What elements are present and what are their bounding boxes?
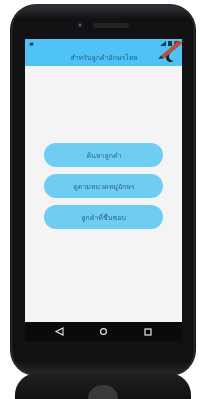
staticText: ค้นหาลูกคำ: [86, 150, 122, 161]
staticText: ดูตามหมวดหมู่อักษร: [73, 181, 135, 192]
button[interactable]: Recent apps: [138, 322, 157, 341]
staticText: ลูกคำที่ชื่นชอบ: [81, 212, 126, 223]
button[interactable]: Home: [94, 322, 113, 341]
button[interactable]: ดูตามหมวดหมู่อักษร: [44, 174, 163, 198]
button[interactable]: Back: [50, 322, 69, 341]
button[interactable]: ค้นหาลูกคำ: [44, 143, 163, 167]
button[interactable]: ลูกคำที่ชื่นชอบ: [44, 205, 163, 229]
staticText: สำหรับลูกคำอักษรไทย: [70, 52, 138, 63]
button[interactable]: Toggle dark mode: [164, 51, 176, 63]
